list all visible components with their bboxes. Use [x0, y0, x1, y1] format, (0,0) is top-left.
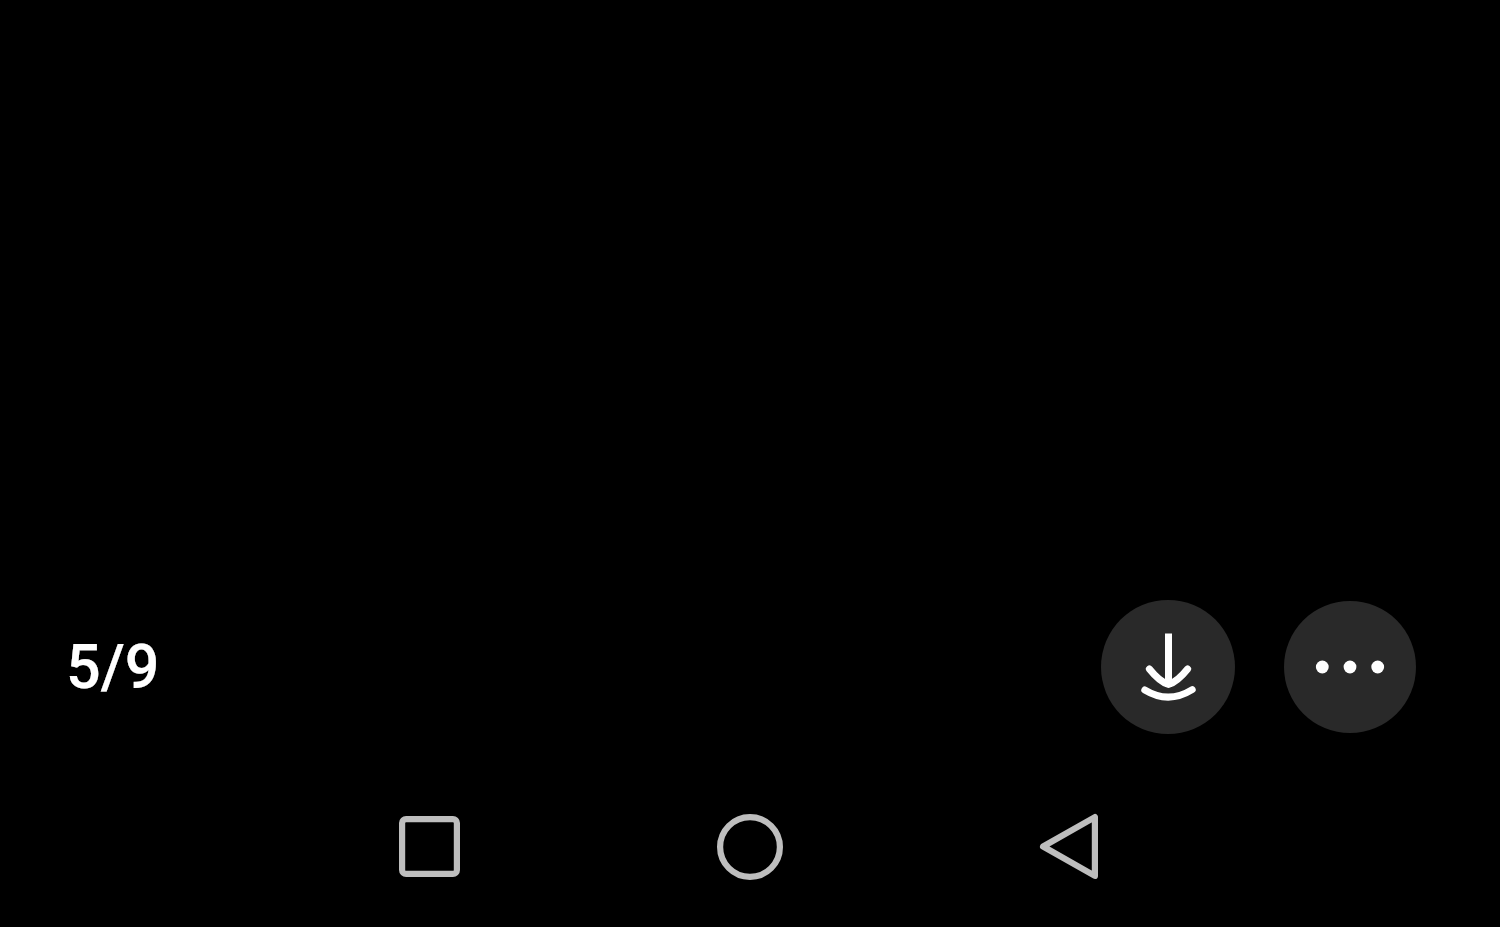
- button[interactable]: Back: [1018, 796, 1119, 897]
- staticText: 5/9: [66, 631, 160, 702]
- button[interactable]: Download: [1101, 600, 1235, 734]
- button[interactable]: Home: [699, 796, 800, 897]
- button[interactable]: More options: [1284, 601, 1416, 733]
- button[interactable]: Recent apps: [379, 796, 480, 897]
